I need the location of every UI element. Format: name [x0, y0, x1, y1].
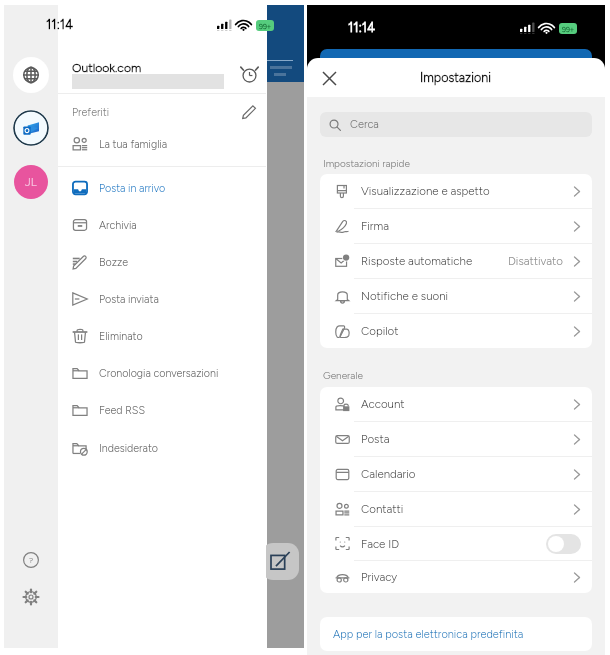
staticText: Disattivato — [508, 254, 563, 268]
button[interactable]: Eliminato — [58, 318, 266, 354]
button[interactable]: Calendario — [320, 457, 592, 491]
button[interactable]: Other accounts — [13, 57, 49, 93]
button[interactable]: Settings — [19, 585, 43, 609]
button[interactable]: Risposte automatiche — [320, 244, 592, 278]
staticText: Impostazioni — [420, 70, 491, 85]
staticText: Contatti — [361, 502, 404, 516]
button[interactable]: App per la posta elettronica predefinita — [320, 617, 592, 651]
button[interactable]: Bozze — [58, 244, 266, 280]
button[interactable]: Account — [320, 387, 592, 421]
staticText: Copilot — [361, 324, 399, 338]
button[interactable]: Face ID — [320, 527, 592, 560]
button[interactable]: Copilot — [320, 314, 592, 348]
staticText: Eliminato — [99, 330, 143, 343]
staticText: Preferiti — [72, 106, 110, 119]
button[interactable]: Close — [316, 65, 342, 91]
staticText: Notifiche e suoni — [361, 289, 449, 303]
staticText: Firma — [361, 219, 389, 233]
button[interactable]: Help — [19, 548, 43, 572]
staticText: 11:14 — [46, 17, 74, 33]
staticText: JL — [25, 175, 37, 189]
button[interactable]: Feed RSS — [58, 392, 266, 428]
button[interactable]: Snooze — [236, 61, 262, 87]
staticText: Risposte automatiche — [361, 254, 473, 268]
staticText: Face ID — [361, 537, 400, 551]
staticText: Visualizzazione e aspetto — [361, 184, 490, 198]
button[interactable]: Indesiderato — [58, 430, 266, 466]
button[interactable]: Profile — [14, 165, 48, 199]
button[interactable]: Outlook account — [13, 110, 49, 146]
button[interactable]: Cerca — [320, 112, 592, 137]
staticText: Cronologia conversazioni — [99, 367, 219, 380]
button[interactable]: Posta — [320, 422, 592, 456]
staticText: Cerca — [350, 118, 379, 131]
staticText: Privacy — [361, 570, 398, 584]
staticText: Archivia — [99, 219, 137, 232]
button[interactable]: Posta inviata — [58, 281, 266, 317]
staticText: Posta inviata — [99, 293, 159, 306]
button[interactable]: Visualizzazione e aspetto — [320, 174, 592, 208]
button[interactable]: Privacy — [320, 561, 592, 593]
button[interactable] — [546, 534, 581, 554]
staticText: ? — [29, 555, 34, 565]
staticText: Indesiderato — [99, 442, 159, 455]
staticText: App per la posta elettronica predefinita — [333, 628, 524, 641]
staticText: Posta in arrivo — [99, 182, 166, 195]
button[interactable]: Archivia — [58, 207, 266, 243]
staticText: Outlook.com — [72, 60, 142, 75]
button[interactable]: Edit favourites — [236, 99, 262, 125]
button[interactable]: Compose — [262, 543, 299, 580]
staticText: Feed RSS — [99, 404, 145, 417]
button[interactable]: Contatti — [320, 492, 592, 526]
staticText: Impostazioni rapide — [323, 157, 410, 169]
staticText: Calendario — [361, 467, 416, 481]
staticText: Posta — [361, 432, 390, 446]
staticText: 99+ — [562, 25, 575, 33]
staticText: Bozze — [99, 256, 129, 269]
button[interactable]: La tua famiglia — [58, 126, 266, 162]
staticText: Account — [361, 397, 405, 411]
button[interactable]: Notifiche e suoni — [320, 279, 592, 313]
staticText: Generale — [323, 369, 363, 381]
button[interactable]: Cronologia conversazioni — [58, 355, 266, 391]
button[interactable]: Firma — [320, 209, 592, 243]
button[interactable]: Posta in arrivo — [58, 170, 266, 206]
staticText: La tua famiglia — [99, 138, 168, 151]
staticText: 99+ — [259, 22, 272, 30]
staticText: 11:14 — [348, 20, 376, 36]
